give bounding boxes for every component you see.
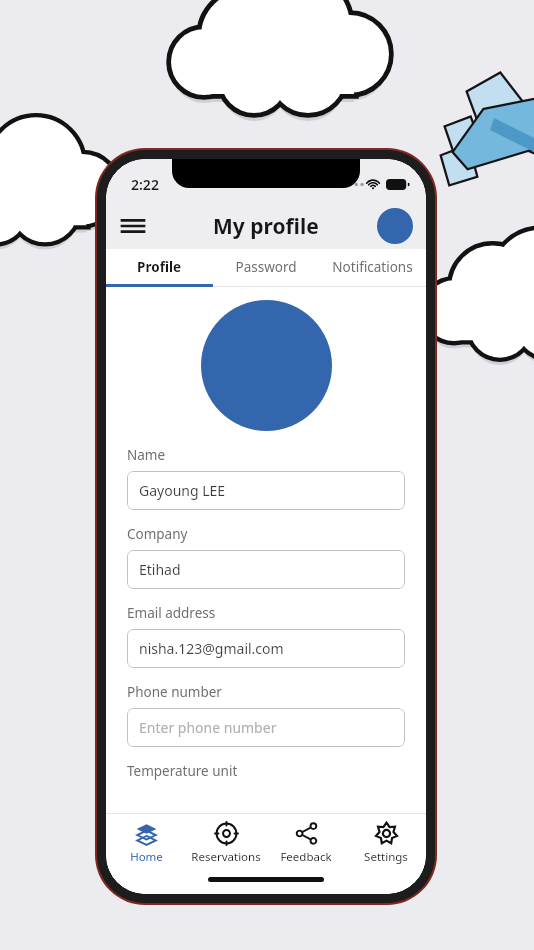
button[interactable]: Enter phone number [127,708,405,747]
staticText: Phone number [127,683,222,701]
staticText: Home [130,849,163,865]
staticText: Temperature unit [127,762,238,780]
button[interactable]: Etihad [127,550,405,589]
staticText: Feedback [280,849,332,865]
staticText: Enter phone number [139,718,277,737]
button[interactable]: Reservations [186,814,266,872]
staticText: 2:22 [131,175,159,194]
button[interactable]: Gayoung LEE [127,471,405,510]
staticText: Name [127,446,166,464]
button[interactable]: nisha.123@gmail.com [127,629,405,668]
staticText: Company [127,525,188,543]
staticText: Settings [364,849,408,865]
button[interactable]: Password [212,249,319,284]
staticText: Email address [127,604,216,622]
button[interactable]: Menu [112,205,154,247]
staticText: Notifications [332,258,413,276]
button[interactable]: Notifications [319,249,426,284]
staticText: nisha.123@gmail.com [139,639,284,658]
staticText: Profile [137,258,181,276]
staticText: Reservations [191,849,261,865]
button[interactable]: Settings [346,814,426,872]
button[interactable]: Account [377,208,413,244]
staticText: Gayoung LEE [139,481,226,500]
staticText: My profile [213,212,319,241]
button[interactable]: Profile photo [201,300,332,431]
staticText: Etihad [139,560,181,579]
button[interactable]: Profile [106,249,212,284]
button[interactable]: Home [106,814,186,872]
button[interactable]: Feedback [266,814,346,872]
staticText: Password [235,258,297,276]
